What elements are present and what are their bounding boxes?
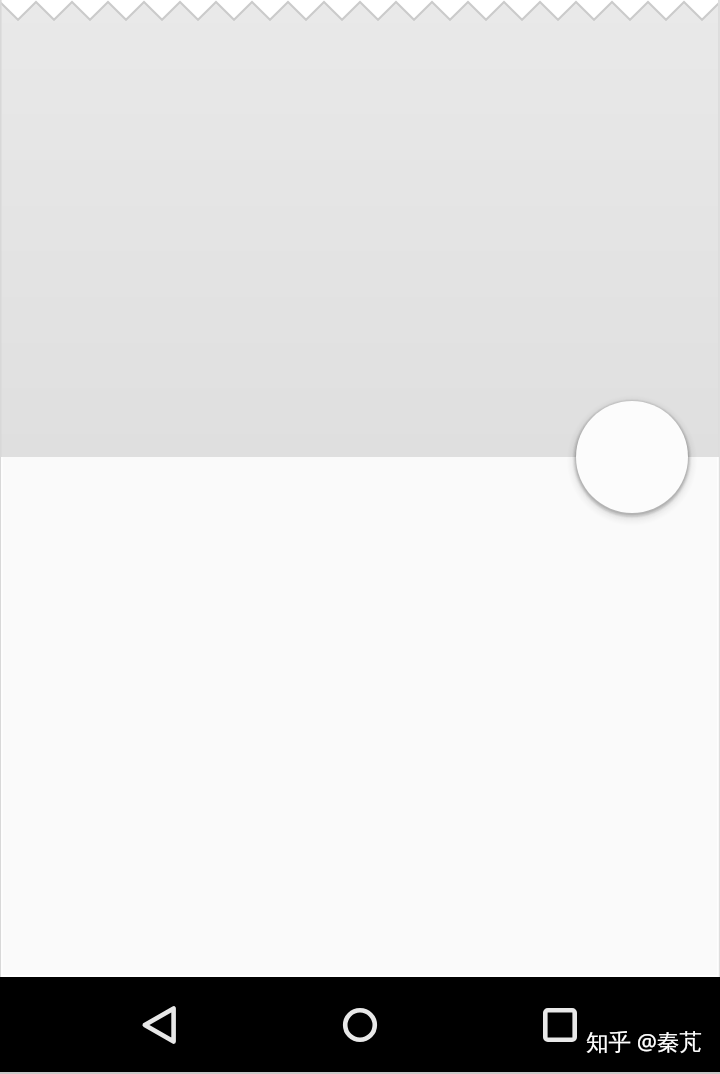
staticText: 知乎 @秦芃 xyxy=(586,1026,703,1057)
button[interactable]: Add xyxy=(576,401,688,513)
button[interactable]: Back xyxy=(128,993,192,1057)
button[interactable]: Recent apps xyxy=(528,993,592,1057)
button[interactable]: Home xyxy=(328,993,392,1057)
